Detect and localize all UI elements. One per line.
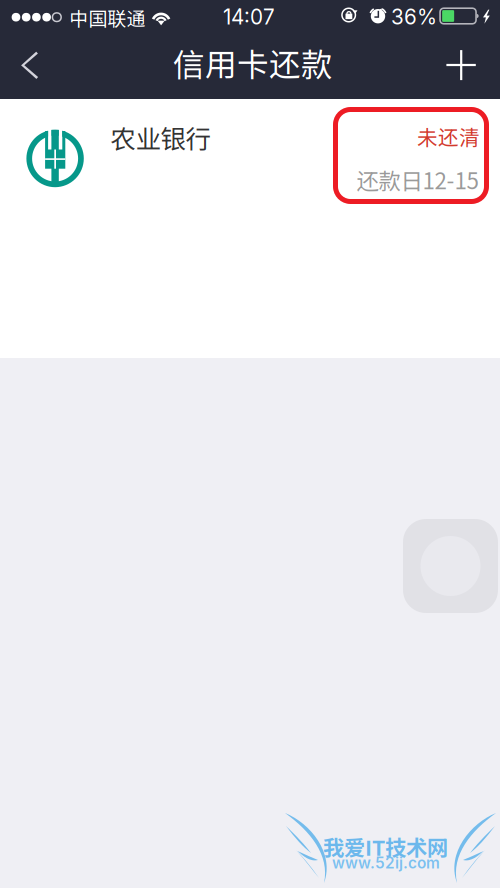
staticText: 14:07 (223, 4, 275, 29)
button[interactable]: Add card (431, 37, 491, 93)
staticText: 中国联通 (69, 4, 145, 31)
button[interactable]: 农业银行 (0, 99, 500, 219)
staticText: www.52ij.com (332, 854, 440, 872)
button[interactable]: Back (2, 37, 58, 93)
staticText: 农业银行 (110, 119, 210, 156)
staticText: 36% (391, 4, 437, 29)
staticText: 还款日12-15 (356, 163, 478, 196)
staticText: 我爱IT技术网 (323, 831, 448, 862)
staticText: 信用卡还款 (173, 40, 333, 85)
staticText: 未还清 (417, 121, 480, 151)
